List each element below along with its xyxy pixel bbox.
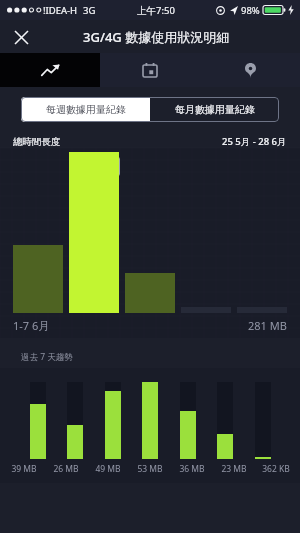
staticText: 上午7:50 bbox=[137, 4, 175, 17]
staticText: 每週數據用量紀錄 bbox=[46, 103, 126, 116]
staticText: 總時間長度 bbox=[13, 136, 61, 148]
staticText: 362 KB bbox=[256, 463, 296, 475]
staticText: 3G/4G 數據使用狀況明細 bbox=[83, 28, 230, 46]
staticText: 23 MB bbox=[214, 463, 254, 475]
staticText: 98% bbox=[241, 4, 260, 17]
button[interactable]: Location bbox=[200, 53, 300, 87]
button[interactable]: 每週數據用量紀錄 bbox=[21, 97, 150, 122]
staticText: 1-7 6月 bbox=[13, 318, 50, 333]
button[interactable]: Calendar bbox=[100, 53, 200, 87]
staticText: 25 5月 - 28 6月 bbox=[222, 135, 287, 148]
staticText: 3G bbox=[83, 4, 96, 17]
button[interactable]: 每月數據用量紀錄 bbox=[150, 97, 279, 122]
staticText: 53 MB bbox=[130, 463, 170, 475]
staticText: 過去 7 天趨勢 bbox=[21, 351, 73, 363]
staticText: 281 MB bbox=[248, 318, 287, 333]
button[interactable]: Usage trend bbox=[0, 53, 100, 87]
staticText: 39 MB bbox=[4, 463, 44, 475]
staticText: 36 MB bbox=[172, 463, 212, 475]
staticText: !IDEA-H bbox=[43, 4, 78, 17]
staticText: 49 MB bbox=[88, 463, 128, 475]
staticText: 26 MB bbox=[46, 463, 86, 475]
button[interactable]: Close bbox=[8, 24, 34, 50]
staticText: 每月數據用量紀錄 bbox=[175, 103, 255, 116]
